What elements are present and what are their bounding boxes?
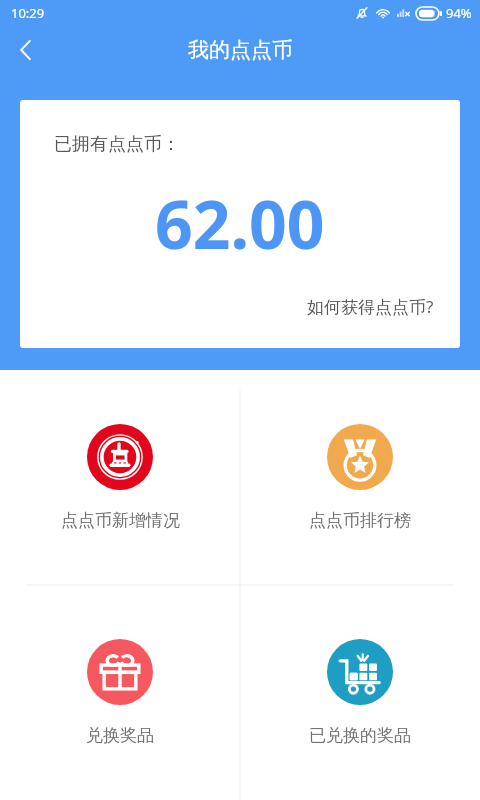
staticText: 已兑换的奖品 [309, 725, 411, 746]
button[interactable]: 点点币排行榜 [240, 370, 480, 585]
staticText: 点点币排行榜 [309, 510, 411, 531]
staticText: 如何获得点点币? [307, 295, 434, 318]
staticText: 我的点点币 [188, 37, 293, 63]
button[interactable]: 兑换奖品 [0, 585, 240, 800]
staticText: 点点币新增情况 [61, 510, 180, 531]
staticText: 10:29 [11, 4, 45, 22]
staticText: 兑换奖品 [86, 725, 154, 746]
staticText: 94% [446, 4, 472, 22]
button[interactable]: 点点币新增情况 [0, 370, 240, 585]
staticText: 已拥有点点币： [54, 133, 180, 156]
button[interactable]: Back [0, 26, 52, 74]
button[interactable]: 已兑换的奖品 [240, 585, 480, 800]
staticText: 62.00 [155, 178, 325, 268]
button[interactable]: 如何获得点点币? [303, 293, 438, 320]
